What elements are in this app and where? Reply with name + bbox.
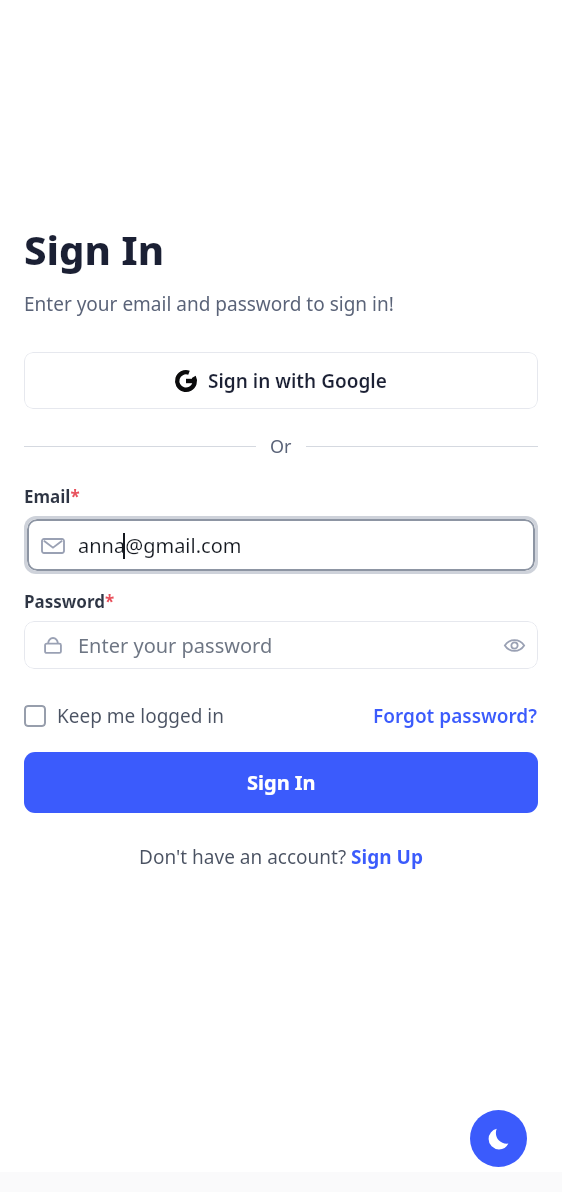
button[interactable]: Sign in with Google [24,352,538,409]
staticText: Forgot password? [373,703,538,729]
button[interactable]: Toggle dark mode [470,1110,527,1167]
button[interactable]: Don't have an account? Sign Up [139,844,423,870]
button[interactable]: Forgot password? [373,703,538,729]
button[interactable]: anna@gmail.com [27,519,535,571]
button[interactable]: Keep me logged in [24,703,224,729]
staticText: Email* [24,485,80,508]
staticText: Sign in with Google [208,368,387,394]
staticText: Sign In [24,222,165,276]
button[interactable]: Sign In [24,752,538,813]
button[interactable]: Enter your password [24,621,538,669]
staticText: Password* [24,590,115,613]
staticText: anna@gmail.com [78,532,242,559]
staticText: Sign In [247,769,316,796]
staticText: Enter your password [78,632,273,659]
staticText: Don't have an account? Sign Up [139,844,423,870]
staticText: Or [270,434,292,459]
button[interactable]: Show password [496,627,532,663]
staticText: Keep me logged in [57,703,224,729]
staticText: Enter your email and password to sign in… [24,291,394,317]
